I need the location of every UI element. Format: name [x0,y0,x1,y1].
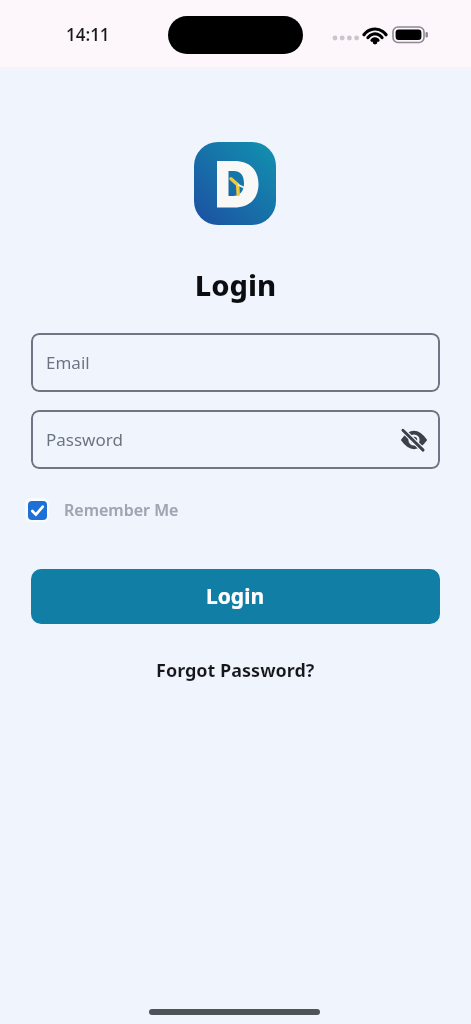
button[interactable]: Password [31,410,440,469]
staticText: Password [46,428,123,451]
button[interactable]: Forgot Password? [156,658,315,683]
staticText: Email [46,351,90,374]
staticText: Forgot Password? [156,658,315,683]
staticText: Login [206,582,265,611]
staticText: Remember Me [64,499,179,521]
button[interactable]: Email [31,333,440,392]
button[interactable]: Remember Me [25,498,179,522]
staticText: Login [0,265,471,304]
button[interactable]: Login [31,569,440,624]
staticText: 14:11 [66,23,110,46]
